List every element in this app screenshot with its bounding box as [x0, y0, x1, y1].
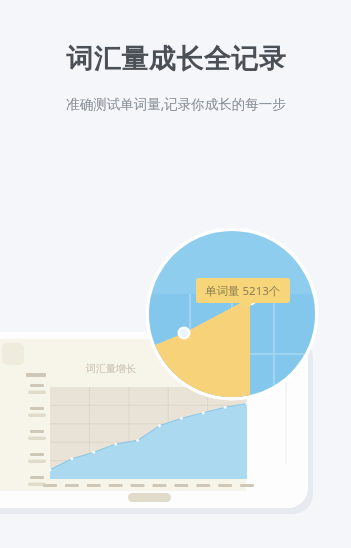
staticText: 词汇量增长 — [86, 362, 136, 375]
staticText: 单词量 5213个 — [205, 283, 281, 299]
staticText: 准确测试单词量,记录你成长的每一步 — [66, 95, 286, 113]
staticText: 词汇量成长全记录 — [66, 42, 286, 76]
button[interactable]: 单词量 5213个 — [196, 278, 290, 303]
button[interactable]: 词汇量增长 — [86, 362, 136, 375]
